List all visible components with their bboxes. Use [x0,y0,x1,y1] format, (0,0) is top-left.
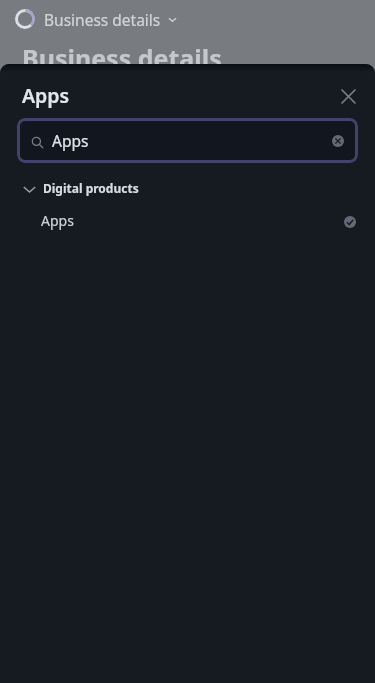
staticText: Digital products [43,180,139,196]
button[interactable]: Clear search [328,131,348,151]
button[interactable]: Apps [17,118,358,163]
button[interactable]: Apps [0,207,375,233]
staticText: Business details [44,9,161,30]
staticText: Business details [22,41,222,75]
staticText: Apps [22,82,70,109]
staticText: Apps [52,130,89,151]
staticText: Apps [41,211,74,230]
button[interactable]: Close [336,84,360,108]
button[interactable]: Digital products [0,177,375,199]
